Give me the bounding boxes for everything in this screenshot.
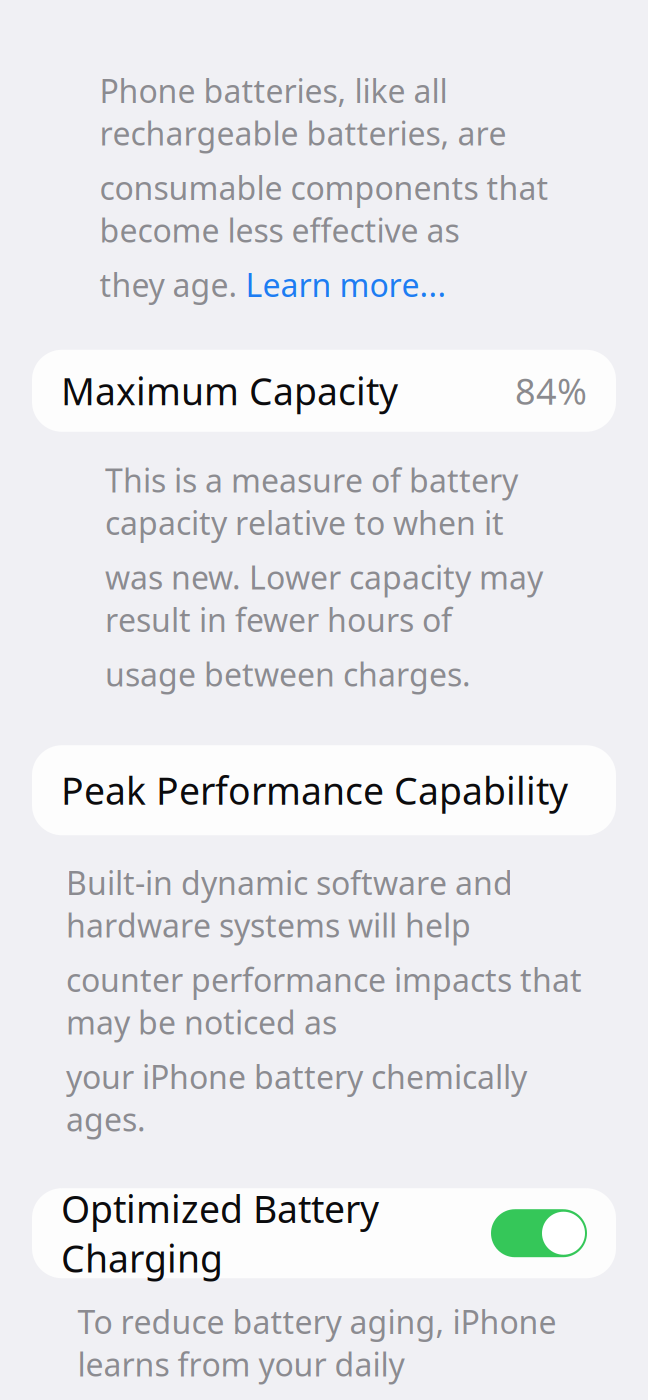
staticText: they age. [99,263,245,306]
staticText: consumable components that become less e… [99,166,548,251]
staticText: Learn more... [245,263,446,306]
staticText: counter performance impacts that may be … [66,958,582,1043]
staticText: Phone batteries, like all rechargeable b… [99,69,506,154]
staticText: Maximum Capacity [61,366,398,416]
button[interactable]: Learn more... [245,263,446,306]
staticText: This is a measure of battery capacity re… [105,459,518,544]
button[interactable]: Maximum Capacity [32,350,616,432]
staticText: your iPhone battery chemically ages. [66,1055,527,1140]
staticText: Peak Performance Capability [61,765,568,815]
staticText: To reduce battery aging, iPhone learns f… [77,1300,556,1385]
staticText: usage between charges. [105,653,471,695]
button[interactable]: Peak Performance Capability [32,745,616,835]
button[interactable]: Optimized Battery Charging [32,1188,616,1278]
staticText: 84% [515,367,587,415]
staticText: was new. Lower capacity may result in fe… [105,556,543,641]
staticText: Optimized Battery Charging [61,1184,379,1283]
staticText: Built-in dynamic software and hardware s… [66,861,513,946]
